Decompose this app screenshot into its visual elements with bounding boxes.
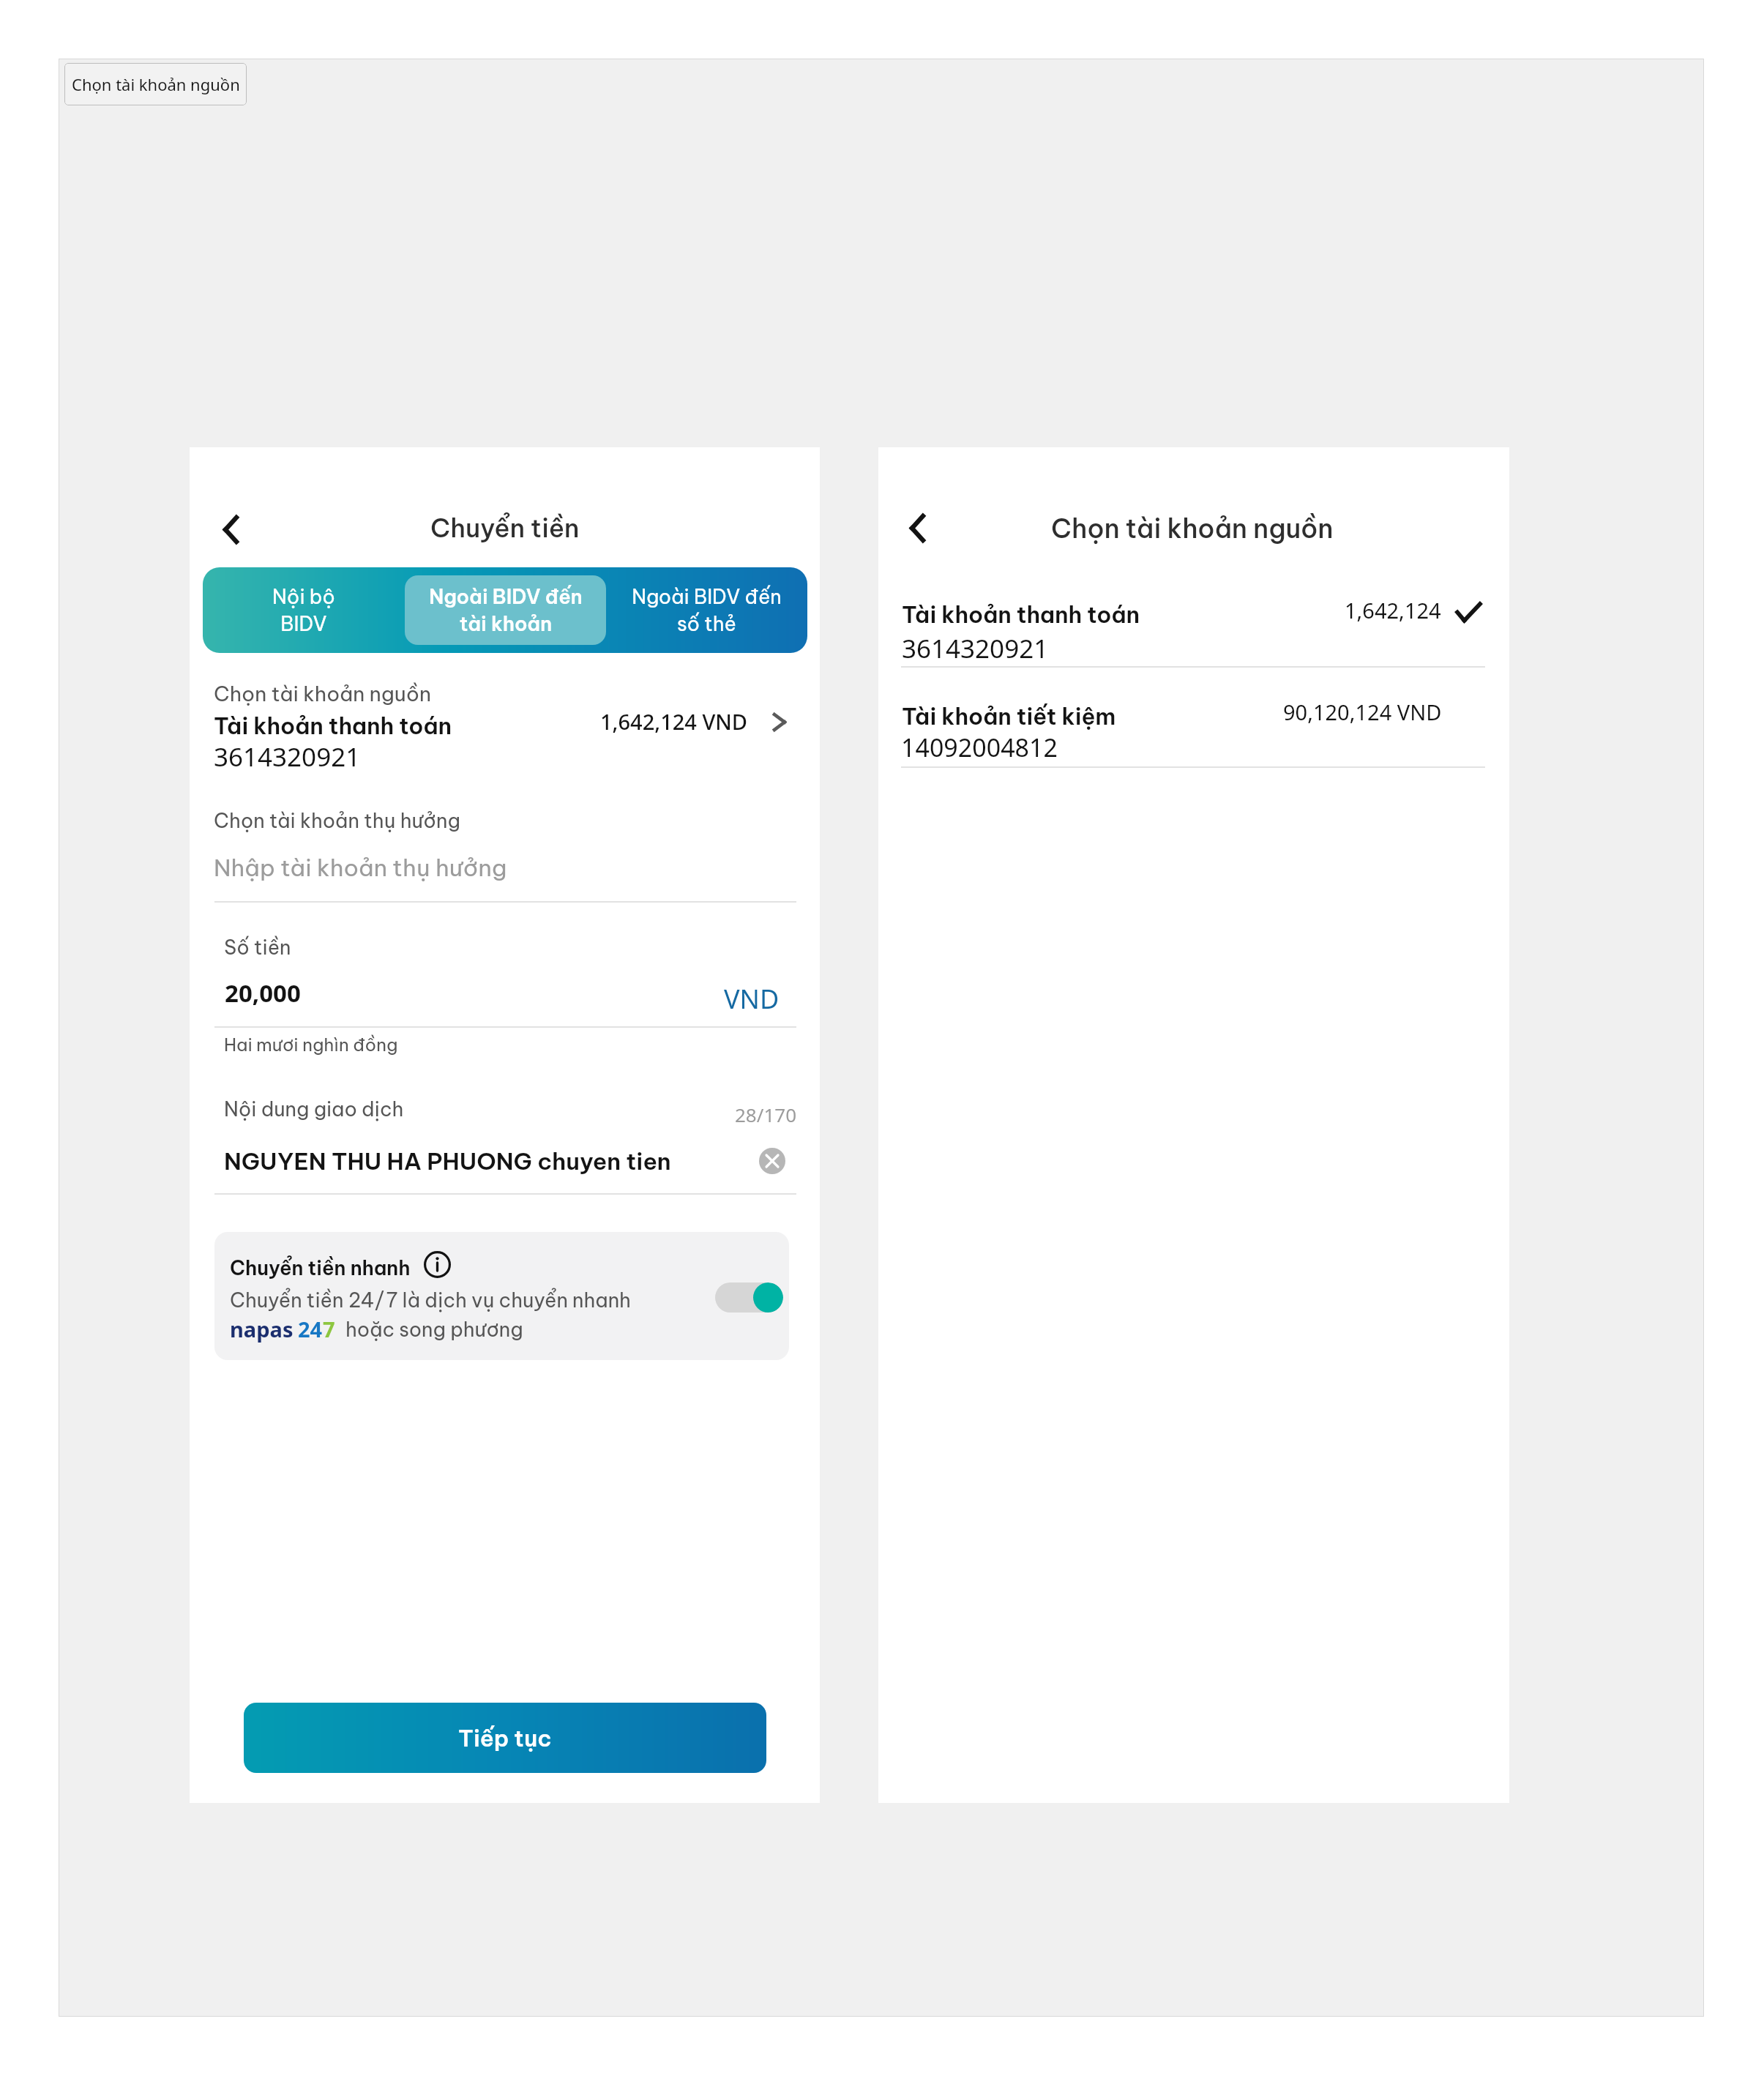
button[interactable]: Chọn tài khoản nguồn [64,63,247,105]
staticText: Nội dung giao dịch [224,1097,404,1121]
staticText: Số tiền [224,935,291,960]
staticText: 3614320921 [214,739,361,774]
button[interactable]: Back [894,502,940,553]
staticText: napas [230,1315,294,1343]
staticText: Ngoài BIDV đến số thẻ [632,584,782,636]
button[interactable]: Information [424,1251,451,1278]
staticText: Chuyển tiền nhanh [230,1255,411,1280]
staticText: 3614320921 [902,631,1049,666]
staticText: 24 [298,1315,323,1343]
staticText: 7 [323,1315,335,1343]
button[interactable]: Nội bộ BIDV [203,575,405,645]
button[interactable]: Ngoài BIDV đến tài khoản [405,575,606,645]
staticText: Chuyển tiền [430,512,580,544]
staticText: Chọn tài khoản nguồn [214,681,431,706]
staticText: Nội bộ BIDV [272,584,335,636]
staticText: 1,642,124 [1345,596,1441,624]
staticText: 20,000 [225,977,301,1009]
button[interactable]: Back [208,504,253,555]
staticText: 28/170 [735,1102,797,1127]
button[interactable] [900,594,1486,660]
button[interactable] [212,707,797,769]
staticText: Chuyển tiền 24/7 là dịch vụ chuyển nhanh [230,1288,631,1313]
button[interactable]: Ngoài BIDV đến số thẻ [606,575,807,645]
button[interactable] [900,694,1486,760]
button[interactable]: Clear text [759,1148,785,1174]
button[interactable]: Fast transfer switch [715,1282,783,1313]
staticText: NGUYEN THU HA PHUONG chuyen tien [224,1146,671,1176]
staticText: Nhập tài khoản thụ hưởng [214,853,507,882]
staticText: VND [724,981,780,1017]
staticText: Chọn tài khoản nguồn [1051,512,1334,545]
staticText: Tài khoản thanh toán [902,600,1140,629]
staticText: Tài khoản thanh toán [214,712,452,740]
staticText: Hai mươi nghìn đồng [224,1034,398,1056]
staticText: 90,120,124 VND [1283,698,1442,726]
staticText: hoặc song phương [345,1317,523,1342]
button[interactable]: Chuyển tiền nhanh [214,1232,789,1360]
staticText: Tài khoản tiết kiệm [902,702,1116,731]
staticText: Chọn tài khoản nguồn [72,73,240,95]
staticText: Ngoài BIDV đến tài khoản [429,584,583,636]
staticText: 14092004812 [901,731,1058,764]
staticText: Tiếp tục [458,1724,552,1752]
staticText: Chọn tài khoản thụ hưởng [214,808,460,833]
button[interactable]: Tiếp tục [244,1703,766,1773]
staticText: 1,642,124 VND [600,707,748,736]
